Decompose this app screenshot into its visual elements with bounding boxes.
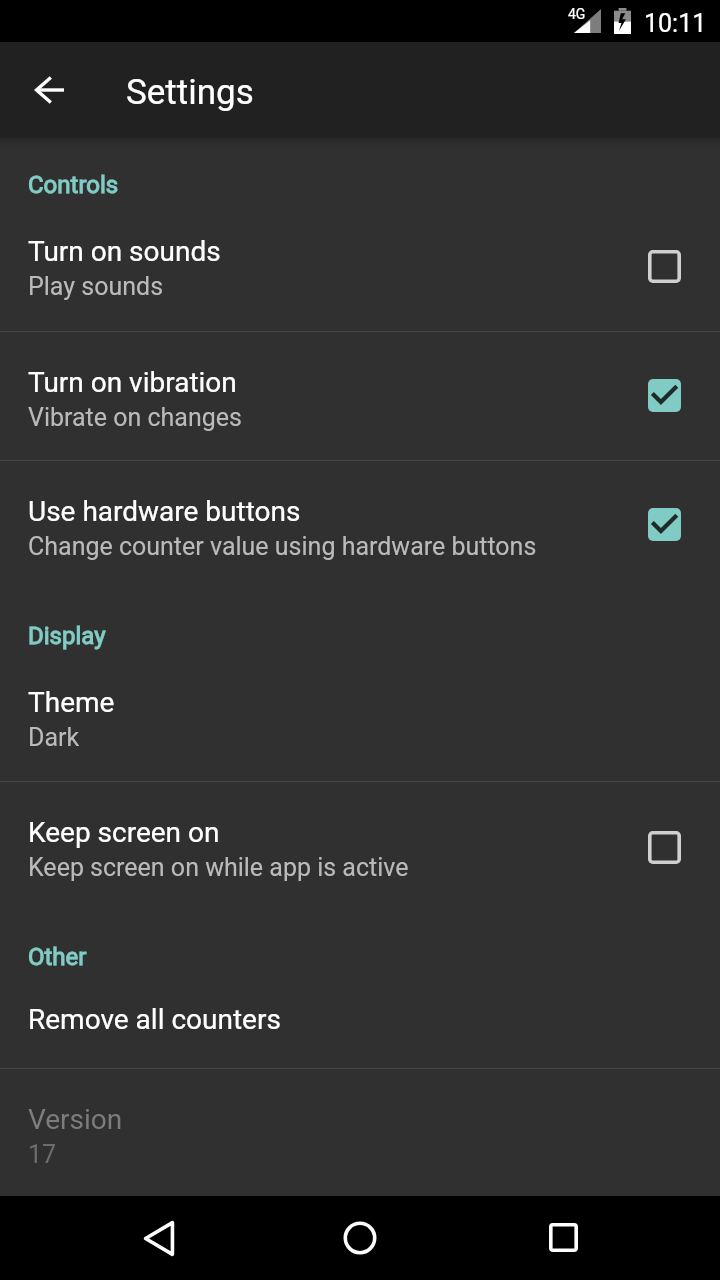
staticText: Theme [28,686,115,719]
button[interactable]: Navigate up [21,62,77,118]
staticText: Turn on sounds [28,235,221,268]
button[interactable]: Keep screen on [0,782,720,911]
staticText: Use hardware buttons [28,495,301,528]
button[interactable]: Theme [0,652,720,782]
staticText: Vibrate on changes [28,403,242,432]
button[interactable]: Turn on vibration [0,332,720,461]
button[interactable]: Turn on sounds [636,238,692,294]
staticText: Controls [28,171,119,199]
staticText: 10:11 [644,9,707,38]
button[interactable]: Use hardware buttons [636,496,692,552]
staticText: Play sounds [28,272,164,301]
staticText: Display [28,622,106,650]
staticText: Keep screen on [28,816,220,849]
staticText: 17 [28,1140,57,1169]
button[interactable]: Home [332,1210,388,1266]
staticText: Turn on vibration [28,366,237,399]
staticText: Change counter value using hardware butt… [28,532,537,561]
staticText: Keep screen on while app is active [28,853,409,882]
staticText: Remove all counters [28,1003,281,1036]
button[interactable]: Turn on sounds [0,201,720,331]
button[interactable]: Back [131,1210,187,1266]
button[interactable]: Remove all counters [0,975,720,1068]
button[interactable]: Recent apps [535,1209,591,1265]
button[interactable]: Use hardware buttons [0,461,720,591]
staticText: Version [28,1103,123,1136]
button[interactable]: Turn on vibration [636,367,692,423]
staticText: Other [28,943,87,971]
button[interactable]: Keep screen on [636,819,692,875]
staticText: 4G [568,6,586,22]
staticText: Dark [28,723,80,752]
staticText: Settings [126,72,254,113]
button[interactable]: Version [0,1069,720,1199]
